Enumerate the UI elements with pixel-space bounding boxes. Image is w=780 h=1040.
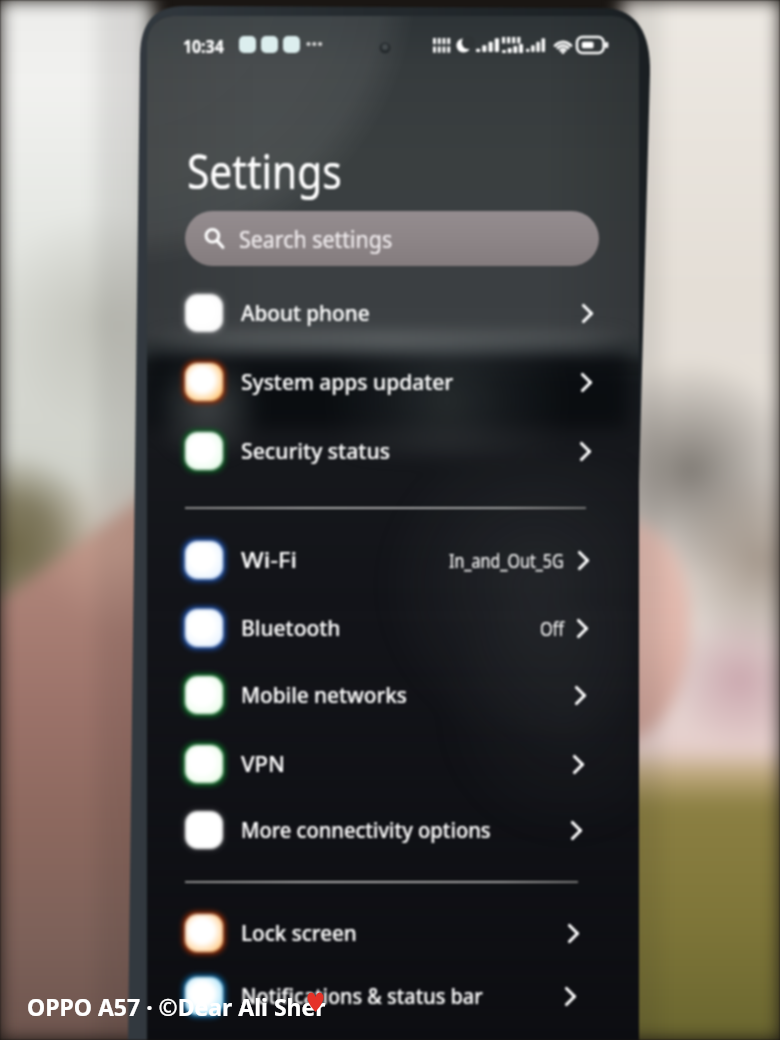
staticText: Security status	[241, 437, 390, 466]
staticText: Notifications & status bar	[241, 982, 483, 1011]
staticText: System apps updater	[241, 368, 454, 397]
button[interactable]: VPN	[150, 730, 593, 798]
staticText: In_and_Out_5G	[449, 548, 564, 574]
button[interactable]: System apps updater	[150, 348, 601, 416]
button[interactable]: More connectivity options	[150, 796, 591, 864]
staticText: Settings	[187, 139, 342, 203]
staticText: Bluetooth	[241, 614, 341, 643]
button[interactable]: Mobile networks	[150, 661, 595, 729]
staticText: VPN	[241, 750, 286, 779]
button[interactable]: Search settings	[185, 211, 599, 266]
staticText: More connectivity options	[241, 816, 491, 845]
button[interactable]: Security status	[150, 417, 600, 485]
button[interactable]: About phone	[150, 279, 602, 347]
staticText: Search settings	[239, 223, 392, 254]
staticText: 10:34	[183, 34, 224, 54]
staticText: Mobile networks	[241, 681, 407, 710]
button[interactable]: Bluetooth	[150, 594, 597, 662]
button[interactable]: Notifications & status bar	[150, 962, 585, 1030]
staticText: Wi-Fi	[241, 546, 297, 575]
staticText: Lock screen	[241, 919, 357, 948]
button[interactable]: Wi-Fi	[150, 526, 598, 594]
staticText: Off	[540, 616, 564, 642]
staticText: About phone	[241, 299, 370, 328]
button[interactable]: Lock screen	[150, 899, 588, 967]
staticText: OPPO A57 · ©Dear Ali Sher	[27, 991, 326, 1022]
